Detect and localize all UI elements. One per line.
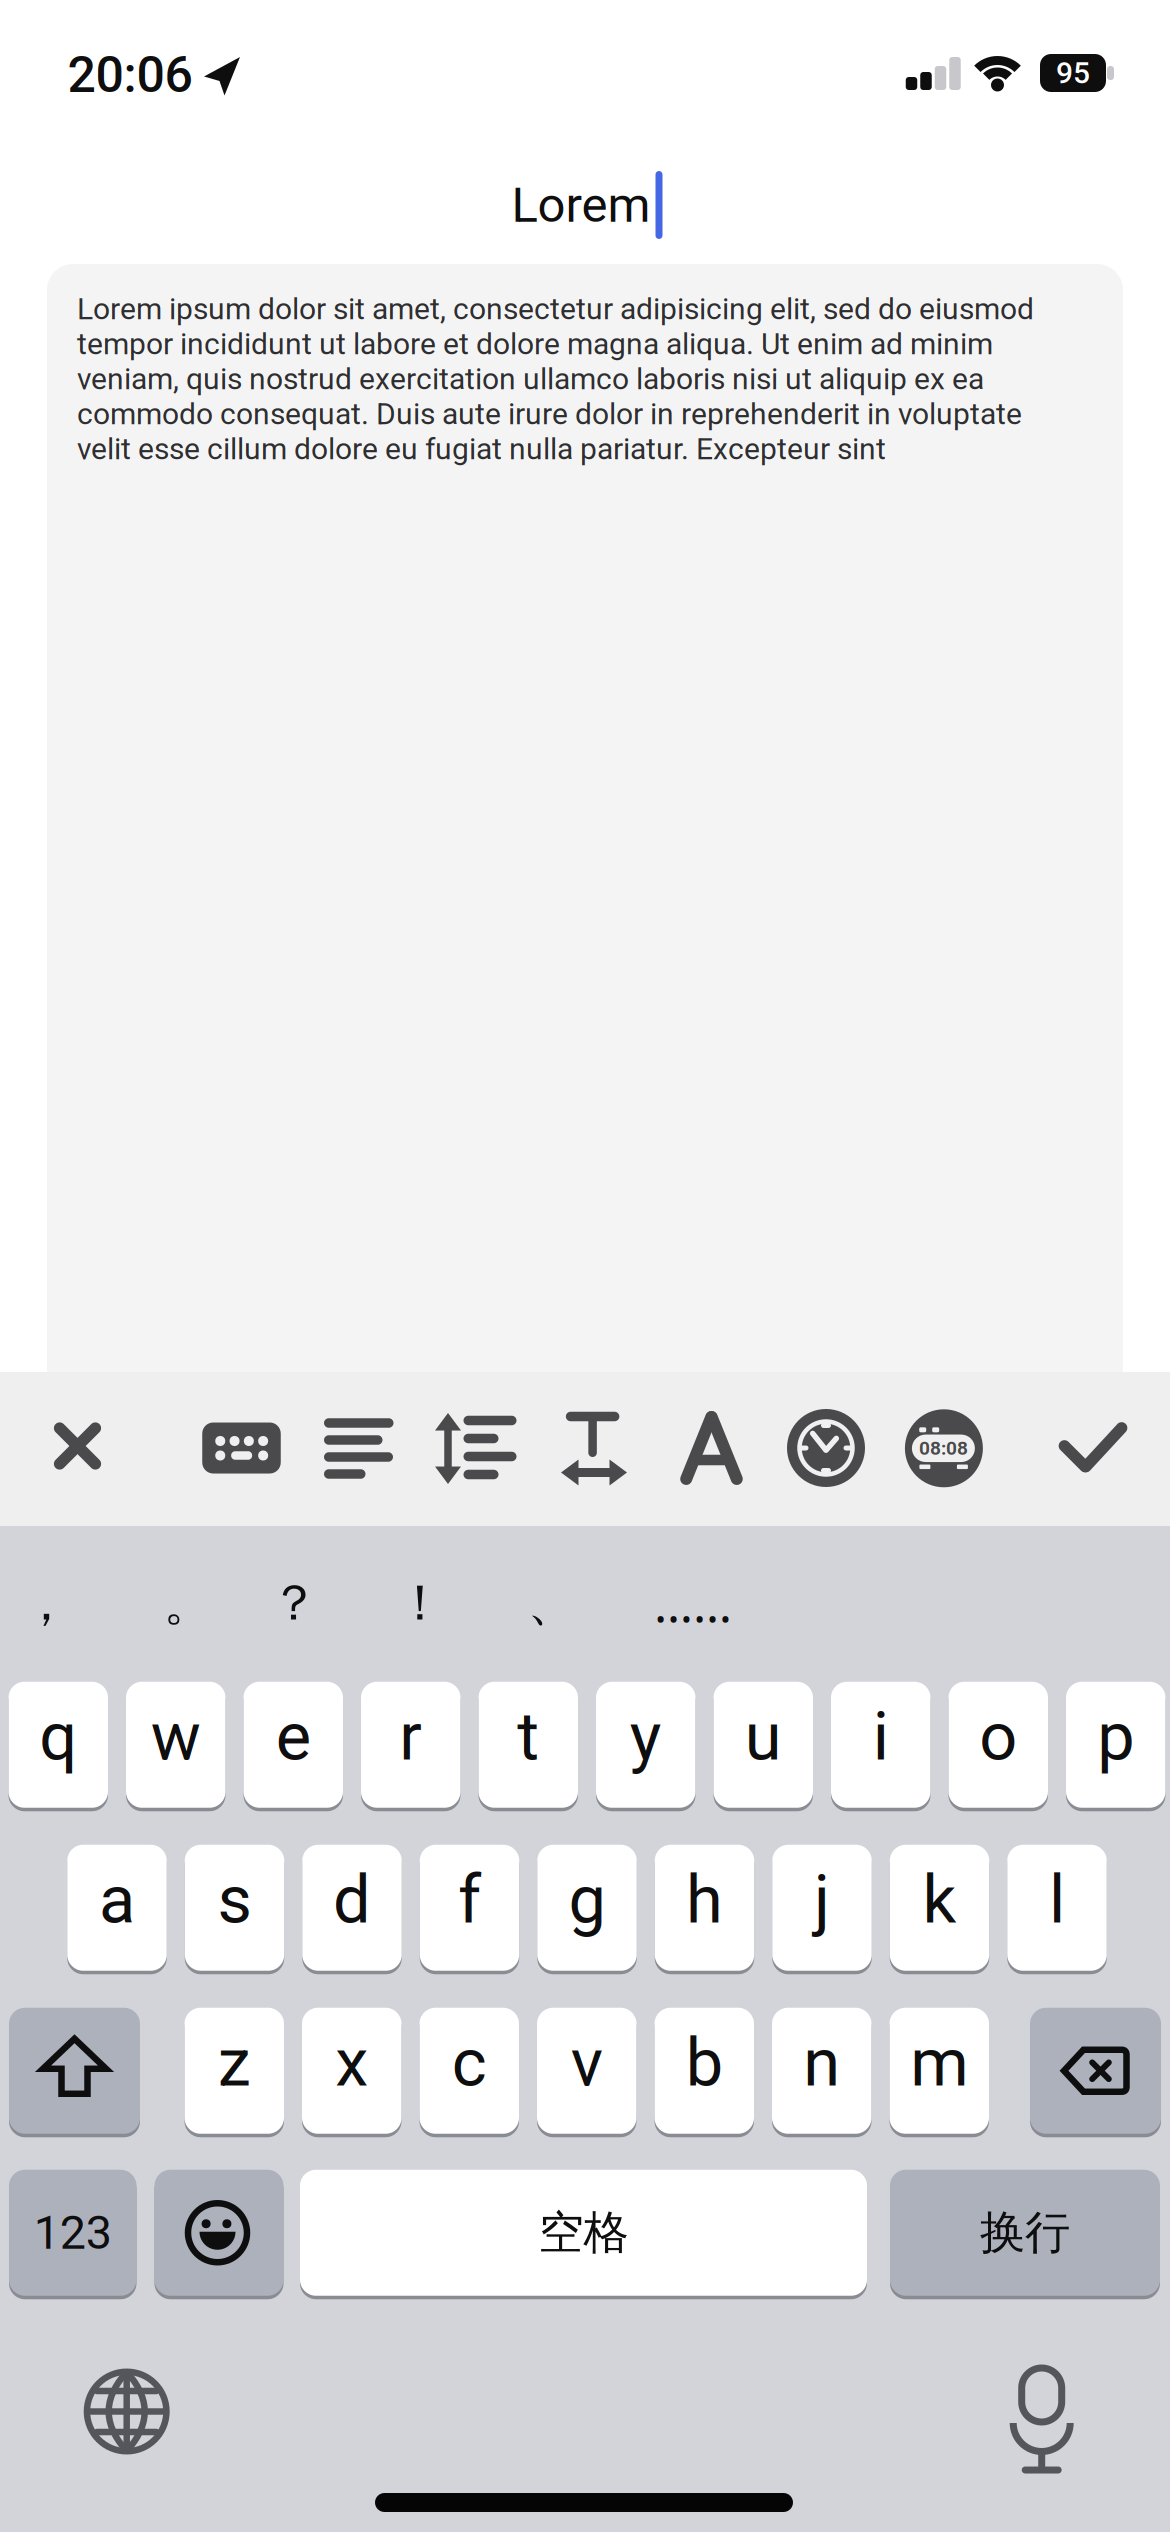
staticText: 123 — [34, 2205, 112, 2260]
staticText: velit esse cillum dolore eu fugiat nulla… — [77, 431, 886, 467]
staticText: ！ — [395, 1573, 444, 1633]
staticText: 20:06 — [67, 46, 192, 104]
staticText: w — [151, 1698, 201, 1776]
staticText: p — [1097, 1698, 1134, 1776]
button[interactable]: Clock — [787, 1409, 865, 1487]
button[interactable]: exclamation mark — [395, 1573, 444, 1633]
staticText: v — [571, 2024, 603, 2102]
button[interactable]: Next keyboard — [82, 2366, 172, 2456]
staticText: u — [745, 1698, 782, 1776]
staticText: j — [814, 1861, 830, 1939]
button[interactable]: c — [419, 2008, 519, 2138]
button[interactable]: i — [831, 1682, 930, 1812]
button[interactable]: o — [948, 1682, 1048, 1812]
staticText: ， — [21, 1573, 70, 1633]
staticText: s — [217, 1861, 251, 1939]
staticText: 95 — [1056, 55, 1090, 91]
staticText: r — [399, 1698, 422, 1776]
staticText: a — [99, 1861, 135, 1939]
staticText: x — [335, 2024, 368, 2102]
button[interactable]: Dictate — [1002, 2357, 1082, 2481]
button[interactable]: y — [596, 1682, 695, 1812]
button[interactable]: k — [890, 1845, 989, 1975]
button[interactable]: z — [184, 2008, 284, 2138]
button[interactable]: 123 — [9, 2170, 136, 2300]
staticText: o — [979, 1698, 1017, 1776]
staticText: b — [686, 2024, 723, 2102]
button[interactable]: w — [126, 1682, 225, 1812]
button[interactable]: Timer — [905, 1409, 983, 1487]
button[interactable]: n — [772, 2008, 871, 2138]
button[interactable]: Done — [1062, 1426, 1123, 1469]
button[interactable]: comma — [21, 1573, 70, 1633]
staticText: k — [922, 1861, 956, 1939]
staticText: Lorem ipsum dolor sit amet, consectetur … — [77, 291, 1034, 327]
button[interactable]: l — [1007, 1845, 1107, 1975]
button[interactable]: t — [478, 1682, 578, 1812]
staticText: t — [517, 1698, 539, 1776]
staticText: 。 — [163, 1573, 212, 1633]
staticText: n — [803, 2024, 840, 2102]
button[interactable]: s — [185, 1845, 284, 1975]
button[interactable]: full stop — [163, 1573, 212, 1633]
staticText: 空格 — [538, 2205, 628, 2261]
button[interactable]: question mark — [269, 1573, 318, 1633]
button[interactable]: r — [361, 1682, 460, 1812]
button[interactable]: Emoji — [154, 2170, 283, 2300]
button[interactable]: Keyboard — [202, 1422, 281, 1473]
staticText: l — [1049, 1861, 1065, 1939]
staticText: m — [910, 2024, 968, 2102]
staticText: z — [218, 2024, 251, 2102]
button[interactable]: 换行 — [890, 2170, 1160, 2300]
button[interactable]: a — [67, 1845, 167, 1975]
staticText: Lorem — [511, 176, 650, 234]
staticText: tempor incididunt ut labore et dolore ma… — [77, 326, 993, 362]
button[interactable]: enumeration comma — [527, 1573, 576, 1633]
staticText: veniam, quis nostrud exercitation ullamc… — [77, 361, 984, 397]
button[interactable]: d — [302, 1845, 402, 1975]
button[interactable]: q — [8, 1682, 108, 1812]
button[interactable]: Line height — [435, 1412, 517, 1484]
button[interactable]: m — [889, 2008, 989, 2138]
staticText: i — [873, 1698, 889, 1776]
button[interactable]: Close — [46, 1415, 108, 1477]
staticText: q — [39, 1698, 77, 1776]
button[interactable]: f — [420, 1845, 519, 1975]
button[interactable]: x — [302, 2008, 401, 2138]
button[interactable]: b — [654, 2008, 754, 2138]
button[interactable]: g — [537, 1845, 637, 1975]
staticText: …… — [654, 1570, 732, 1636]
button[interactable]: Text alignment — [324, 1418, 394, 1479]
button[interactable]: Font — [683, 1413, 740, 1483]
button[interactable]: e — [243, 1682, 343, 1812]
staticText: 换行 — [980, 2205, 1070, 2261]
button[interactable]: h — [655, 1845, 754, 1975]
staticText: 08:08 — [919, 1437, 968, 1459]
button[interactable]: Text width — [561, 1411, 627, 1486]
staticText: g — [568, 1861, 605, 1939]
staticText: h — [686, 1861, 723, 1939]
staticText: c — [452, 2024, 487, 2102]
button[interactable]: v — [537, 2008, 636, 2138]
staticText: f — [458, 1861, 481, 1939]
staticText: ？ — [269, 1573, 318, 1633]
button[interactable]: ellipsis — [654, 1570, 732, 1636]
button[interactable]: j — [772, 1845, 872, 1975]
button[interactable]: u — [713, 1682, 813, 1812]
button[interactable]: 空格 — [300, 2170, 867, 2300]
button[interactable]: p — [1066, 1682, 1165, 1812]
staticText: d — [333, 1861, 371, 1939]
button[interactable]: Delete — [1030, 2008, 1161, 2138]
button[interactable]: Shift — [9, 2008, 140, 2138]
staticText: e — [276, 1698, 311, 1776]
staticText: 、 — [527, 1573, 576, 1633]
staticText: commodo consequat. Duis aute irure dolor… — [77, 396, 1022, 432]
staticText: y — [630, 1698, 662, 1776]
